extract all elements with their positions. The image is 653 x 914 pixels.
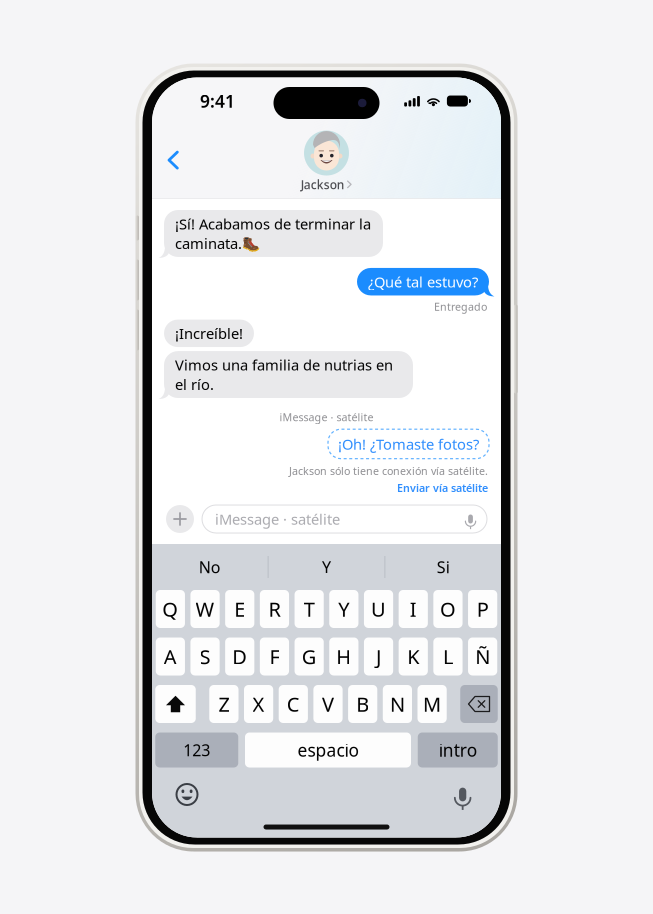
- button[interactable]: 123: [155, 732, 238, 767]
- staticText: iMessage · satélite: [279, 410, 373, 424]
- button[interactable]: H: [329, 637, 358, 675]
- staticText: B: [356, 691, 369, 717]
- staticText: R: [268, 596, 280, 622]
- staticText: H: [336, 643, 351, 670]
- button[interactable]: O: [433, 590, 463, 628]
- staticText: Z: [218, 691, 229, 717]
- button[interactable]: E: [225, 590, 254, 628]
- staticText: Si: [437, 556, 450, 578]
- staticText: V: [322, 691, 334, 717]
- staticText: A: [164, 643, 177, 670]
- staticText: ¡Increíble!: [175, 324, 243, 343]
- staticText: W: [196, 596, 215, 622]
- button[interactable]: [460, 685, 498, 723]
- staticText: F: [269, 643, 279, 670]
- staticText: iMessage · satélite: [215, 509, 340, 529]
- staticText: T: [304, 596, 315, 622]
- staticText: espacio: [297, 738, 358, 761]
- button[interactable]: T: [295, 590, 324, 628]
- staticText: intro: [439, 738, 477, 761]
- button[interactable]: Y: [268, 546, 384, 588]
- button[interactable]: D: [225, 637, 254, 675]
- staticText: Entregado: [434, 299, 487, 314]
- button[interactable]: W: [190, 590, 220, 628]
- button[interactable]: K: [399, 637, 428, 675]
- staticText: Enviar vía satélite: [397, 481, 488, 495]
- button[interactable]: A: [156, 637, 185, 675]
- button[interactable]: Dictation: [454, 783, 471, 806]
- button[interactable]: No: [152, 546, 268, 588]
- staticText: No: [199, 556, 221, 578]
- button[interactable]: Z: [209, 685, 238, 723]
- button[interactable]: F: [260, 637, 289, 675]
- staticText: Y: [338, 596, 349, 622]
- staticText: ¡Oh! ¿Tomaste fotos?: [338, 434, 479, 454]
- staticText: C: [287, 691, 300, 717]
- staticText: U: [371, 596, 386, 622]
- staticText: X: [253, 691, 265, 717]
- staticText: Y: [322, 556, 331, 578]
- button[interactable]: X: [244, 685, 273, 723]
- button[interactable]: Add attachment: [166, 505, 194, 533]
- staticText: G: [302, 643, 317, 670]
- staticText: Jackson sólo tiene conexión vía satélite…: [289, 464, 488, 478]
- staticText: L: [443, 643, 453, 670]
- staticText: 9:41: [200, 89, 235, 112]
- button[interactable]: Ñ: [468, 637, 497, 675]
- button[interactable]: [155, 685, 196, 723]
- staticText: N: [390, 691, 405, 717]
- button[interactable]: J: [364, 637, 393, 675]
- staticText: D: [232, 643, 247, 670]
- button[interactable]: Back: [152, 140, 196, 183]
- button[interactable]: B: [348, 685, 377, 723]
- button[interactable]: V: [313, 685, 343, 723]
- staticText: J: [376, 643, 381, 670]
- staticText: I: [410, 596, 417, 622]
- staticText: P: [477, 596, 489, 622]
- staticText: K: [407, 643, 419, 670]
- button[interactable]: Emoji keyboard: [176, 783, 198, 805]
- button[interactable]: Q: [156, 590, 185, 628]
- staticText: Jackson: [301, 176, 345, 192]
- staticText: Q: [162, 596, 178, 622]
- staticText: M: [423, 691, 441, 717]
- button[interactable]: intro: [418, 732, 498, 767]
- staticText: Vimos una familia de nutrias en el río.: [175, 355, 393, 394]
- button[interactable]: Si: [385, 546, 501, 588]
- button[interactable]: P: [468, 590, 497, 628]
- button[interactable]: I: [399, 590, 428, 628]
- button[interactable]: L: [433, 637, 463, 675]
- button[interactable]: C: [279, 685, 308, 723]
- button[interactable]: R: [260, 590, 289, 628]
- button[interactable]: N: [383, 685, 412, 723]
- button[interactable]: U: [364, 590, 393, 628]
- staticText: ¡Sí! Acabamos de terminar la caminata.🥾: [175, 214, 371, 253]
- staticText: ¿Qué tal estuvo?: [368, 272, 478, 291]
- staticText: 123: [183, 739, 210, 761]
- button[interactable]: espacio: [245, 732, 411, 767]
- staticText: Ñ: [475, 643, 490, 670]
- staticText: S: [200, 643, 211, 670]
- staticText: E: [234, 596, 245, 622]
- button[interactable]: G: [295, 637, 324, 675]
- button[interactable]: Y: [329, 590, 358, 628]
- button[interactable]: M: [417, 685, 447, 723]
- staticText: O: [440, 596, 456, 622]
- button[interactable]: S: [190, 637, 220, 675]
- button[interactable]: Enviar vía satélite: [397, 481, 488, 495]
